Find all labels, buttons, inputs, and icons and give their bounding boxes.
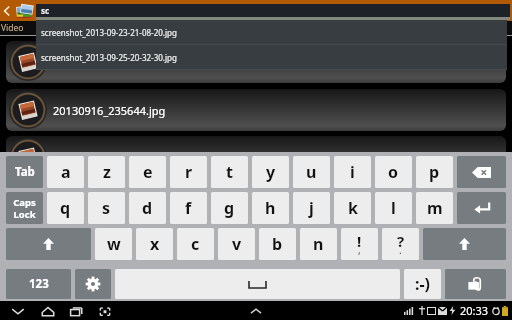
button[interactable]: v [218,228,255,260]
staticText: c [191,233,200,255]
button[interactable]: 20130916_235644.jpg [6,89,506,131]
button[interactable]: Shift [6,228,91,260]
staticText: 20130916_235644.jpg [53,103,166,118]
button[interactable]: r [170,156,207,188]
staticText: sc [41,5,50,16]
button[interactable]: i [334,156,371,188]
button[interactable]: w [95,228,132,260]
staticText: ! [357,231,362,251]
button[interactable]: :-) [404,269,441,299]
button[interactable]: b [259,228,296,260]
button[interactable]: u [293,156,330,188]
button[interactable]: Recents [67,302,85,320]
staticText: s [102,197,111,219]
staticText: q [60,197,71,219]
staticText: o [388,161,399,183]
button[interactable]: Caps Lock [6,192,43,224]
staticText: u [306,161,317,183]
staticText: j [309,197,314,219]
button[interactable]: y [252,156,289,188]
button[interactable]: Navigate up [0,0,13,21]
staticText: w [107,233,121,255]
button[interactable]: e [129,156,166,188]
staticText: a [61,161,71,183]
button[interactable]: Home [39,302,57,320]
button[interactable]: x [136,228,173,260]
staticText: , [358,243,361,257]
button[interactable]: screenshot_2013-09-25-20-32-30.jpg [6,41,506,83]
staticText: . [399,243,402,257]
button[interactable]: Hide keyboard [247,302,265,320]
button[interactable]: ! [341,228,378,260]
staticText: 123 [29,276,49,292]
button[interactable]: l [375,192,412,224]
button[interactable]: Shift [423,228,506,260]
button[interactable]: k [334,192,371,224]
staticText: h [265,197,276,219]
button[interactable]: c [177,228,214,260]
button[interactable]: screenshot_2013-09-25-20-32-30.jpg [36,45,507,69]
button[interactable]: screenshot_2013-09-23-21-08-20.jpg [36,20,507,44]
staticText: screenshot_2013-09-25-20-32-30.jpg [53,55,240,70]
button[interactable]: p [416,156,453,188]
staticText: :-) [415,273,431,295]
staticText: l [391,197,396,219]
button[interactable]: o [375,156,412,188]
button[interactable]: Attach [445,269,506,299]
button[interactable]: j [293,192,330,224]
staticText: Tab [15,164,35,180]
staticText: v [232,233,242,255]
button[interactable]: ? [382,228,419,260]
button[interactable]: n [300,228,337,260]
button[interactable]: Backspace [457,156,506,188]
button[interactable]: 20130916_235100.jpg [6,136,506,152]
staticText: Video [1,22,24,34]
staticText: x [150,233,160,255]
button[interactable]: z [88,156,125,188]
button[interactable]: Back [9,302,27,320]
staticText: p [429,161,440,183]
staticText: i [350,161,355,183]
button[interactable]: 123 [6,269,71,299]
staticText: Caps Lock [13,196,36,220]
staticText: e [143,161,153,183]
button[interactable]: t [211,156,248,188]
staticText: d [142,197,153,219]
staticText: t [226,161,233,183]
button[interactable]: Enter [457,192,506,224]
staticText: f [185,197,192,219]
staticText: z [103,161,111,183]
button[interactable]: Space [115,269,400,299]
staticText: screenshot_2013-09-25-20-32-30.jpg [41,52,177,63]
button[interactable]: a [47,156,84,188]
button[interactable]: q [47,192,84,224]
staticText: 20:33 [460,303,489,318]
button[interactable]: Settings [75,269,111,299]
button[interactable]: s [88,192,125,224]
staticText: k [348,197,358,219]
staticText: g [224,197,235,219]
staticText: y [266,161,276,183]
button[interactable]: sc [36,4,510,17]
staticText: ? [397,231,405,251]
staticText: screenshot_2013-09-23-21-08-20.jpg [41,27,177,38]
button[interactable]: Tab [6,156,43,188]
staticText: n [313,233,324,255]
button[interactable]: d [129,192,166,224]
button[interactable]: Gallery [13,0,35,21]
button[interactable]: h [252,192,289,224]
button[interactable]: g [211,192,248,224]
button[interactable]: Screenshot [96,302,114,320]
staticText: b [272,233,283,255]
staticText: r [185,161,193,183]
staticText: m [427,197,443,219]
button[interactable]: f [170,192,207,224]
button[interactable]: m [416,192,453,224]
